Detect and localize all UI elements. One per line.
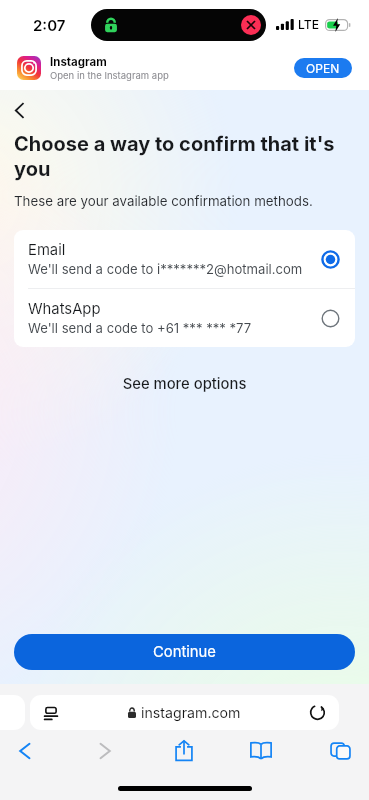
button[interactable]: See more options	[0, 375, 369, 393]
button[interactable]: Continue	[14, 634, 355, 670]
staticText: WhatsApp	[28, 300, 101, 318]
other: Page settings	[43, 705, 59, 721]
button[interactable]: Back	[0, 730, 53, 771]
button[interactable]: Tabs	[312, 730, 368, 771]
staticText: We'll send a code to +61 *** *** *77	[28, 320, 252, 336]
staticText: LTE	[298, 17, 320, 32]
staticText: Choose a way to confirm that it's you	[14, 132, 355, 181]
button[interactable]: Back	[4, 95, 34, 125]
other: Reload	[309, 704, 326, 721]
staticText: Email	[28, 241, 66, 259]
staticText: OPEN	[306, 61, 340, 76]
staticText: Open in the Instagram app	[50, 70, 169, 81]
staticText: These are your available confirmation me…	[14, 193, 313, 209]
button[interactable]: OPEN	[294, 58, 352, 78]
staticText: 2:07	[33, 16, 66, 34]
button[interactable]: Bookmarks	[233, 730, 289, 771]
button[interactable]: Page settings	[30, 695, 339, 730]
staticText: instagram.com	[141, 704, 241, 721]
staticText: Continue	[153, 643, 216, 661]
staticText: Instagram	[50, 55, 107, 69]
button[interactable]: Email	[14, 230, 355, 288]
staticText: We'll send a code to i*******2@hotmail.c…	[28, 261, 303, 277]
button[interactable]: Forward	[77, 730, 133, 771]
button[interactable]: Share	[156, 730, 212, 771]
button[interactable]: WhatsApp	[14, 289, 355, 347]
